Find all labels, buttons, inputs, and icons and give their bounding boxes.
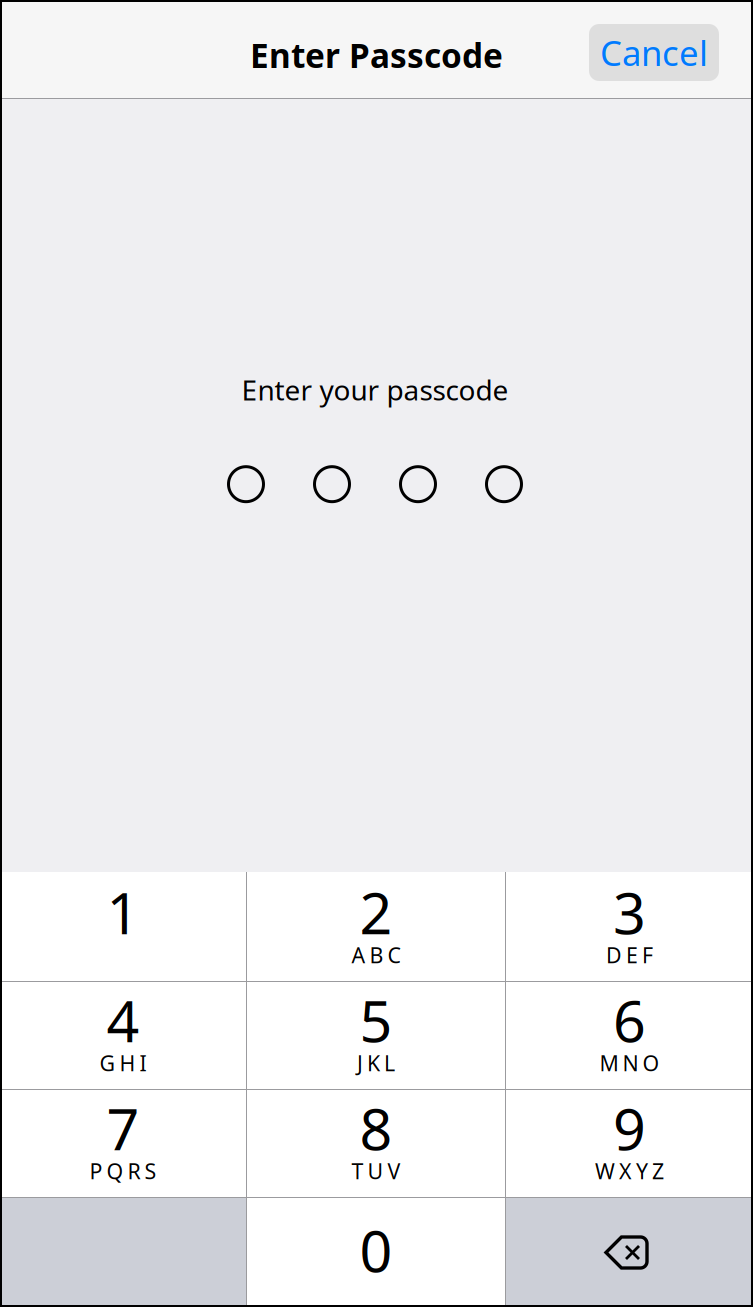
button[interactable]: 2 [247, 872, 505, 981]
staticText: 0 [359, 1212, 392, 1288]
button[interactable]: 5 [247, 982, 505, 1089]
staticText: 4 [106, 982, 139, 1058]
staticText: W X Y Z [595, 1157, 664, 1185]
staticText: 7 [106, 1090, 139, 1166]
staticText: J K L [357, 1049, 395, 1077]
button[interactable]: 8 [247, 1090, 505, 1197]
staticText: Enter Passcode [250, 33, 503, 77]
button[interactable]: Cancel [589, 24, 719, 81]
staticText: 9 [613, 1090, 646, 1166]
staticText: G H I [99, 1049, 146, 1077]
staticText: M N O [599, 1049, 659, 1077]
staticText: 8 [359, 1090, 392, 1166]
button[interactable]: 7 [0, 1090, 246, 1197]
staticText: 6 [613, 982, 646, 1058]
staticText: 3 [613, 874, 646, 950]
staticText: 2 [359, 874, 392, 950]
staticText: D E F [606, 941, 653, 969]
staticText: T U V [351, 1157, 400, 1185]
staticText: P Q R S [89, 1157, 156, 1185]
staticText: Cancel [600, 29, 708, 75]
button[interactable]: 0 [247, 1198, 505, 1307]
staticText: 5 [359, 982, 392, 1058]
button[interactable]: 6 [506, 982, 753, 1089]
button[interactable]: 1 [0, 872, 246, 981]
button[interactable]: Delete [506, 1198, 753, 1307]
staticText: 1 [106, 874, 139, 950]
button[interactable]: 9 [506, 1090, 753, 1197]
staticText: A B C [351, 941, 400, 969]
button[interactable]: 4 [0, 982, 246, 1089]
staticText: Enter your passcode [241, 371, 508, 408]
button[interactable]: 3 [506, 872, 753, 981]
